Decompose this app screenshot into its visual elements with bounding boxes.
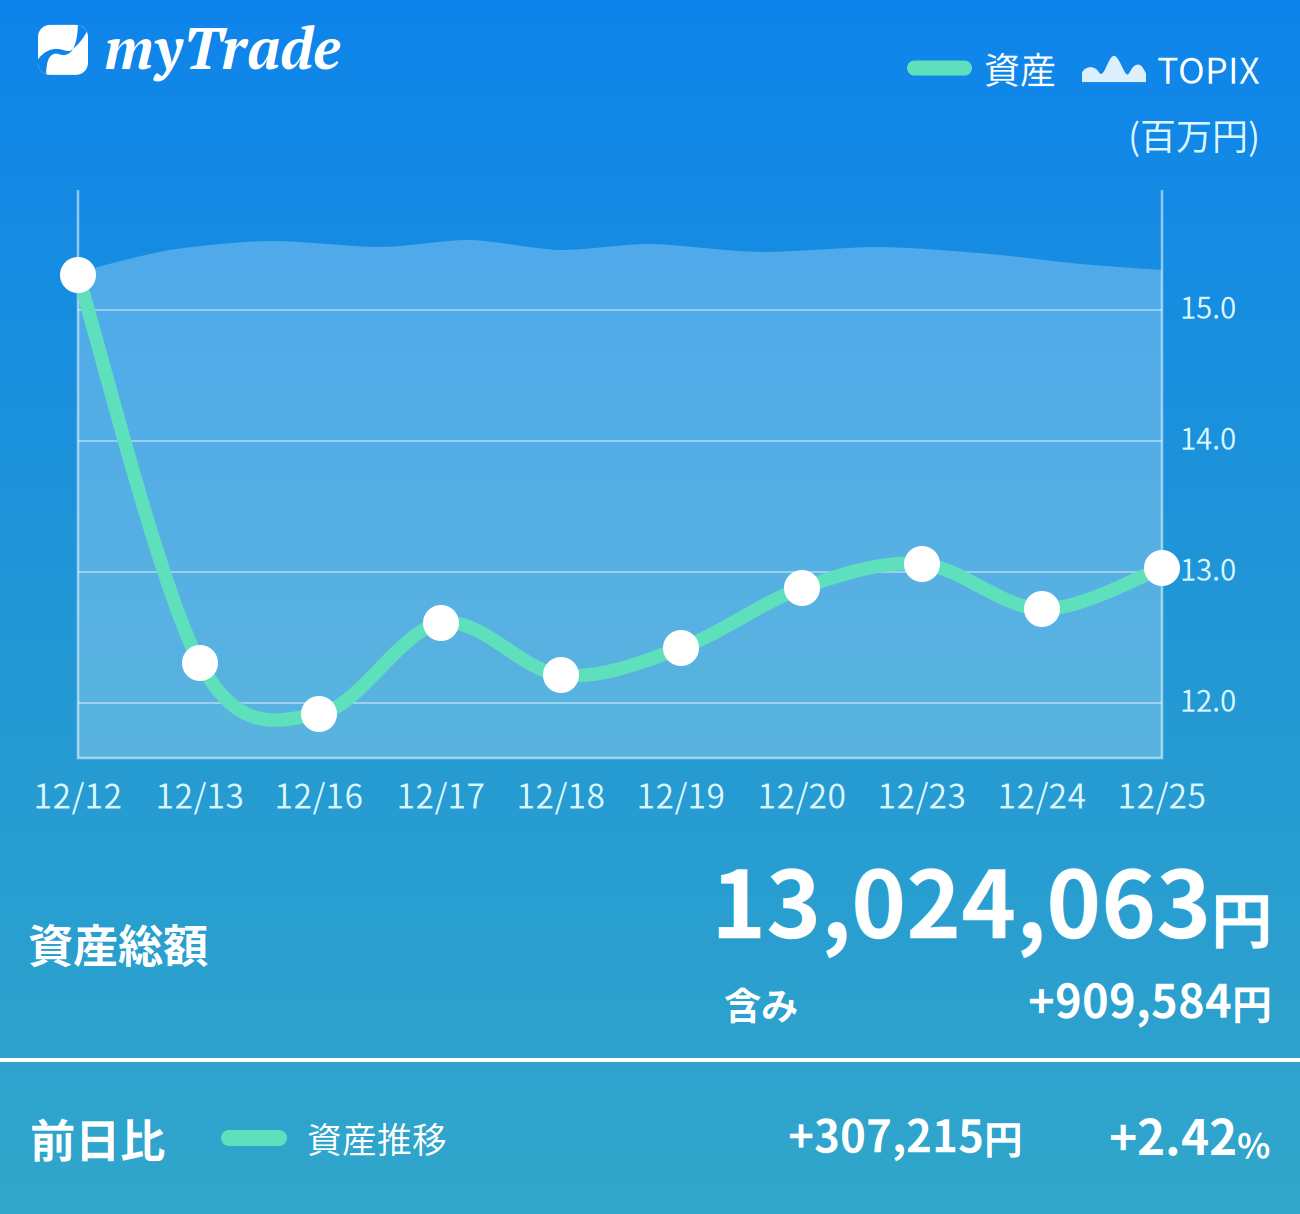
staticText: 円 [1232, 973, 1272, 1031]
staticText: +307,215 [788, 1101, 984, 1165]
staticText: % [1237, 1119, 1270, 1169]
staticText: +909,584 [1028, 965, 1232, 1031]
staticText: 前日比 [30, 1105, 165, 1171]
button[interactable]: TOPIX [1082, 42, 1260, 94]
staticText: 円 [1211, 872, 1272, 961]
button[interactable]: 資産 [907, 42, 1056, 94]
button[interactable]: 前日比 [0, 1062, 1300, 1214]
staticText: 12.0 [1180, 678, 1236, 720]
staticText: 含み [724, 977, 798, 1031]
staticText: 12/19 [636, 770, 725, 818]
staticText: 12/16 [274, 770, 363, 818]
button[interactable]: 資産総額 [0, 830, 1300, 1058]
staticText: 12/23 [877, 770, 966, 818]
staticText: 12/25 [1117, 770, 1206, 818]
staticText: 12/12 [33, 770, 122, 818]
staticText: TOPIX [1157, 42, 1260, 94]
staticText: myTrade [104, 8, 341, 86]
staticText: 12/20 [757, 770, 846, 818]
staticText: 13.0 [1180, 547, 1236, 589]
staticText: (百万円) [1128, 108, 1260, 160]
button[interactable]: myTrade [0, 0, 341, 102]
staticText: 12/18 [516, 770, 605, 818]
staticText: 15.0 [1180, 285, 1236, 327]
staticText: +2.42 [1109, 1099, 1237, 1169]
staticText: 14.0 [1180, 416, 1236, 458]
staticText: 円 [984, 1109, 1023, 1165]
staticText: 12/13 [155, 770, 244, 818]
staticText: 12/24 [997, 770, 1086, 818]
staticText: 13,024,063 [711, 830, 1211, 965]
staticText: 資産推移 [307, 1113, 447, 1163]
staticText: 12/17 [396, 770, 485, 818]
staticText: 資産総額 [28, 910, 208, 976]
staticText: 資産 [984, 42, 1056, 94]
